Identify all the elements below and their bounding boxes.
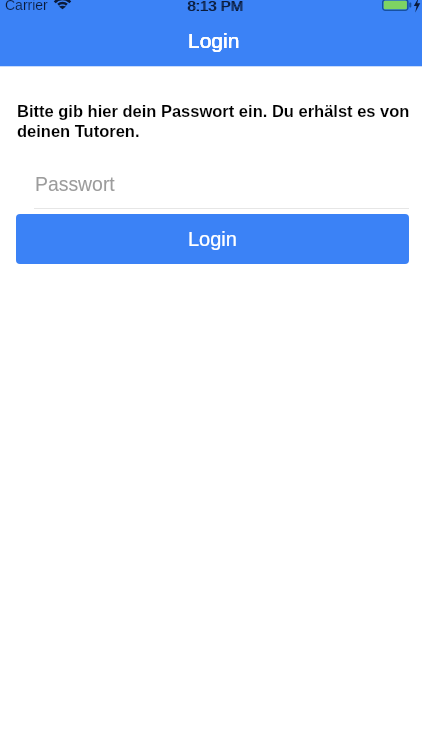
- staticText: Login: [188, 29, 240, 52]
- other: Wi-Fi: [55, 0, 70, 10]
- staticText: Bitte gib hier dein Passwort ein. Du erh…: [17, 102, 416, 141]
- staticText: 8:13 PM: [188, 0, 244, 14]
- button[interactable]: Login: [16, 214, 409, 264]
- button[interactable]: Passwort: [34, 166, 409, 209]
- staticText: 8:13 PM: [187, 0, 243, 14]
- other: Battery charging: [382, 0, 421, 11]
- staticText: Carrier: [5, 0, 48, 13]
- staticText: Passwort: [35, 173, 115, 195]
- staticText: Login: [188, 29, 240, 52]
- staticText: Login: [188, 228, 237, 250]
